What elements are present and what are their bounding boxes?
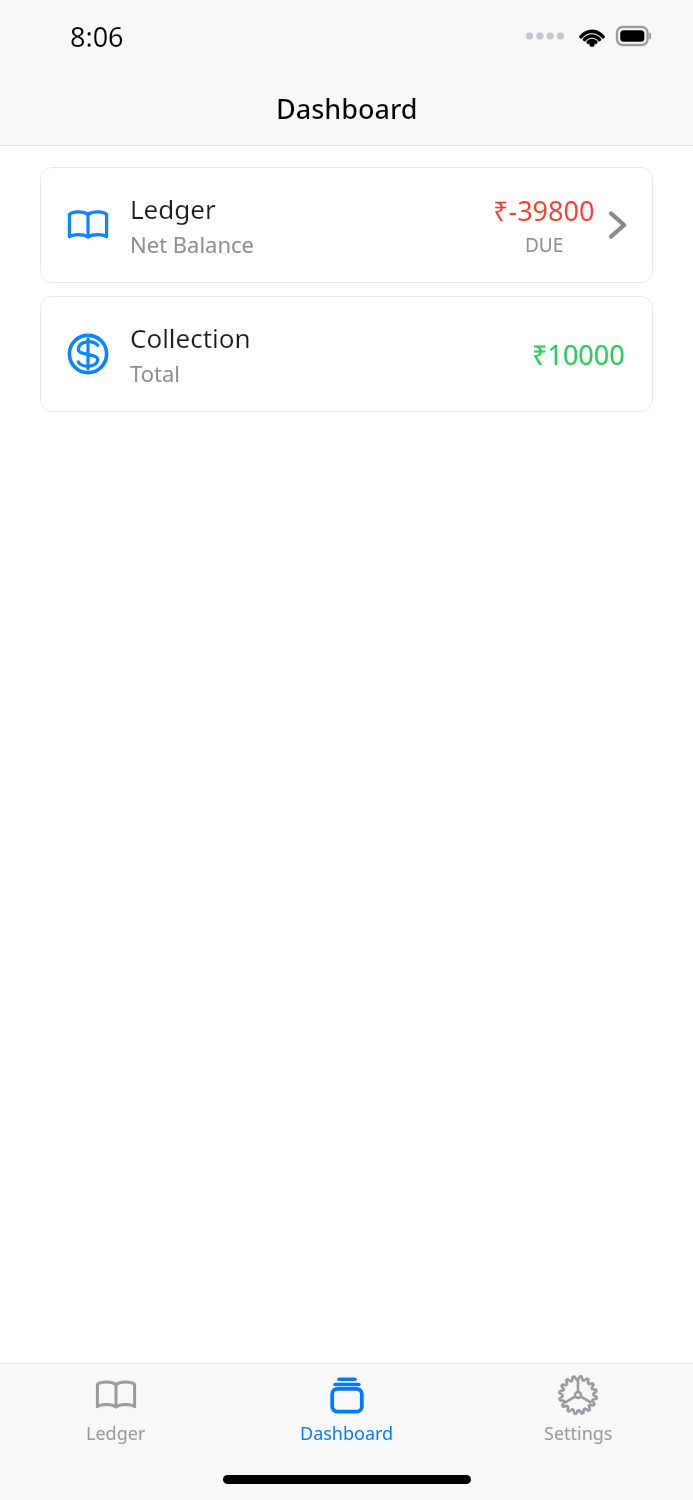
staticText: ₹10000 xyxy=(532,336,625,373)
staticText: Ledger xyxy=(86,1421,146,1446)
staticText: Net Balance xyxy=(130,229,255,259)
staticText: DUE xyxy=(525,232,564,258)
staticText: 8:06 xyxy=(70,18,124,55)
staticText: Ledger xyxy=(130,191,216,226)
button[interactable]: Ledger xyxy=(40,167,653,283)
staticText: Dashboard xyxy=(300,1421,394,1446)
staticText: Collection xyxy=(130,320,251,355)
button[interactable]: Dashboard xyxy=(247,1369,447,1452)
staticText: ₹-39800 xyxy=(493,192,595,229)
staticText: Dashboard xyxy=(276,90,418,127)
button[interactable]: Settings xyxy=(478,1369,678,1452)
staticText: Settings xyxy=(544,1421,613,1446)
button[interactable]: Collection xyxy=(40,296,653,412)
button[interactable]: Ledger xyxy=(16,1369,216,1452)
staticText: Total xyxy=(130,358,180,388)
